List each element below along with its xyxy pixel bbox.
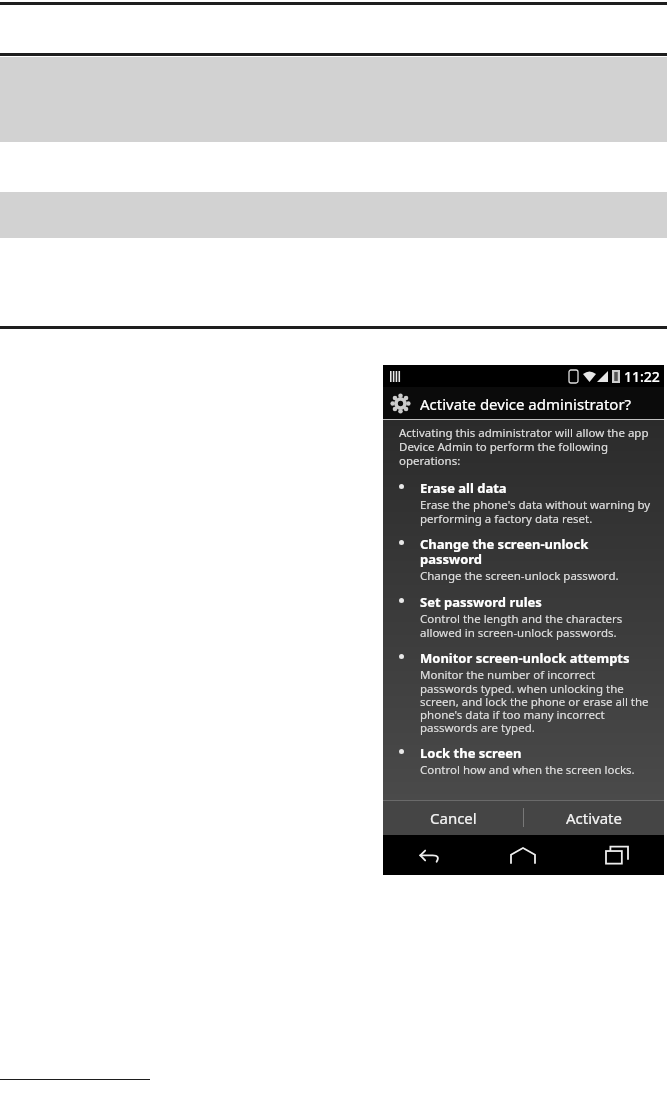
button[interactable]: Recents <box>570 835 664 875</box>
staticText: 11:22 <box>624 367 660 386</box>
staticText: Activate <box>566 808 622 828</box>
staticText: Change the screen-unlock password <box>420 535 589 568</box>
button[interactable]: Home <box>476 835 570 875</box>
button[interactable]: Cancel <box>383 800 523 835</box>
staticText: Activate device administrator? <box>420 394 632 414</box>
button[interactable]: Back <box>383 835 476 875</box>
staticText: Monitor screen-unlock attempts <box>420 649 630 667</box>
staticText: Set password rules <box>420 593 542 611</box>
staticText: Lock the screen <box>420 744 522 762</box>
staticText: Control the length and the characters al… <box>420 611 623 640</box>
staticText: Change the screen-unlock password. <box>420 568 619 584</box>
staticText: Monitor the number of incorrect password… <box>420 667 649 735</box>
staticText: Control how and when the screen locks. <box>420 762 635 778</box>
staticText: Erase all data <box>420 479 507 497</box>
staticText: Activating this administrator will allow… <box>399 425 649 468</box>
button[interactable]: Activate <box>524 800 664 835</box>
staticText: Erase the phone's data without warning b… <box>420 497 651 526</box>
staticText: Cancel <box>430 808 477 828</box>
